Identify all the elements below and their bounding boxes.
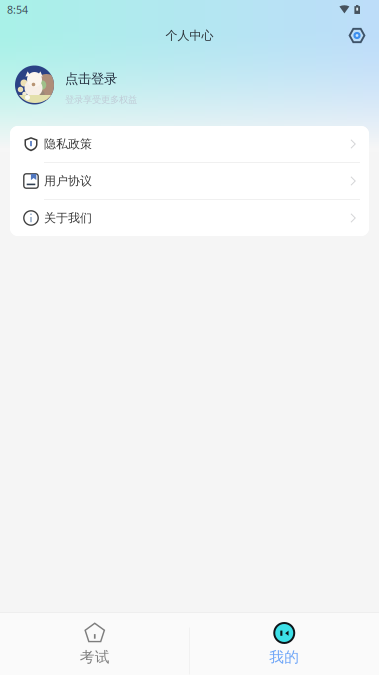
staticText: 点击登录 (65, 71, 117, 87)
button[interactable]: 点击登录 (0, 58, 379, 112)
staticText: 考试 (80, 648, 110, 666)
button[interactable]: 我的 (189, 613, 379, 675)
button[interactable]: 隐私政策 (10, 126, 369, 162)
button[interactable]: 用户协议 (10, 163, 369, 199)
staticText: 登录享受更多权益 (65, 94, 137, 105)
staticText: 用户协议 (44, 174, 92, 188)
staticText: 个人中心 (165, 28, 213, 43)
staticText: 隐私政策 (44, 137, 92, 151)
button[interactable]: 关于我们 (10, 200, 369, 236)
staticText: 8:54 (7, 2, 28, 17)
button[interactable]: 考试 (0, 613, 189, 675)
staticText: 我的 (269, 648, 299, 666)
staticText: 关于我们 (44, 211, 92, 225)
button[interactable]: 设置 (342, 20, 372, 50)
